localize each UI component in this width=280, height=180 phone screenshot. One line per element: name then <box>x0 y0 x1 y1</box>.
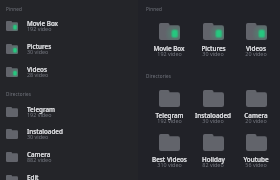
staticText: Directories <box>6 91 32 97</box>
staticText: 30 video <box>27 133 49 140</box>
button[interactable]: Instaloaded <box>191 90 235 127</box>
staticText: Videos <box>246 44 266 53</box>
staticText: 310 video <box>157 161 182 168</box>
staticText: Movie Box <box>153 44 185 53</box>
staticText: 28 video <box>27 71 49 78</box>
staticText: Telegram <box>27 105 56 114</box>
button[interactable]: Videos <box>0 60 138 83</box>
staticText: Videos <box>27 65 47 74</box>
staticText: 20 video <box>245 117 267 124</box>
staticText: 192 video <box>157 50 182 57</box>
staticText: 20 video <box>245 50 267 57</box>
staticText: 882 video <box>27 156 52 163</box>
staticText: 192 video <box>27 111 52 118</box>
staticText: Camera <box>244 111 268 120</box>
button[interactable]: Telegram <box>0 100 138 123</box>
button[interactable]: Telegram <box>147 90 191 127</box>
button[interactable]: Pictures <box>0 37 138 60</box>
button[interactable]: Camera <box>234 90 278 127</box>
staticText: Movie Box <box>27 19 59 28</box>
button[interactable]: Youtube <box>234 134 278 171</box>
button[interactable]: Instaloaded <box>0 122 138 145</box>
button[interactable]: Pictures <box>191 23 235 60</box>
staticText: Best Videos <box>152 155 187 164</box>
staticText: Edit <box>27 173 39 180</box>
staticText: 82 video <box>202 161 224 168</box>
staticText: Camera <box>27 150 51 159</box>
staticText: Pinned <box>6 6 22 12</box>
staticText: Pictures <box>201 44 226 53</box>
staticText: Instaloaded <box>195 111 231 120</box>
staticText: Telegram <box>155 111 184 120</box>
button[interactable]: Best Videos <box>147 134 191 171</box>
button[interactable]: Holiday <box>191 134 235 171</box>
staticText: 30 video <box>27 48 49 55</box>
staticText: 30 video <box>202 50 224 57</box>
staticText: Directories <box>146 73 172 79</box>
button[interactable]: Camera <box>0 145 138 168</box>
staticText: 56 video <box>245 161 267 168</box>
staticText: 12 video <box>27 179 49 180</box>
button[interactable]: Edit <box>0 168 138 180</box>
button[interactable]: Videos <box>234 23 278 60</box>
staticText: 30 video <box>202 117 224 124</box>
staticText: Youtube <box>243 155 269 164</box>
staticText: 192 video <box>157 117 182 124</box>
staticText: Instaloaded <box>27 127 63 136</box>
button[interactable]: Movie Box <box>0 14 138 37</box>
staticText: Pinned <box>146 6 162 12</box>
staticText: 192 video <box>27 25 52 32</box>
button[interactable]: Movie Box <box>147 23 191 60</box>
staticText: Holiday <box>202 155 225 164</box>
staticText: Pictures <box>27 42 52 51</box>
